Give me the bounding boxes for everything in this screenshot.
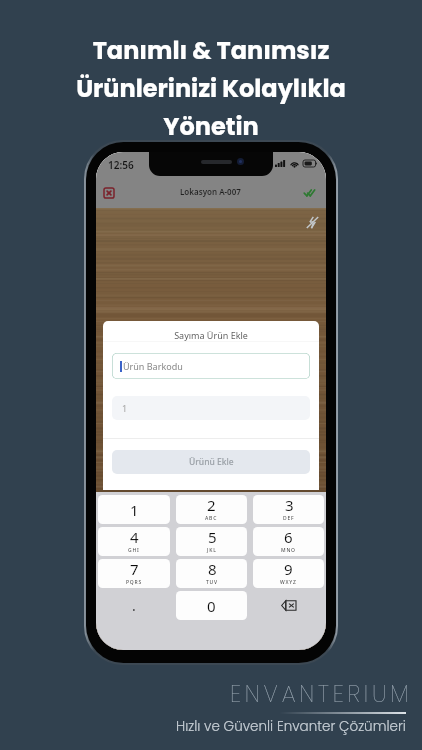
staticText: Lokasyon A-007 <box>180 186 241 197</box>
staticText: JKL <box>207 547 217 554</box>
button[interactable]: Sil <box>253 591 324 620</box>
staticText: . <box>132 596 136 615</box>
staticText: 8 <box>208 559 217 579</box>
staticText: 1 <box>122 402 128 414</box>
button[interactable]: . <box>98 591 170 620</box>
staticText: 1 <box>130 500 139 520</box>
button[interactable]: Ürünü Ekle <box>112 450 310 474</box>
staticText: 6 <box>284 527 293 547</box>
button[interactable]: 1 <box>98 495 170 524</box>
button[interactable]: 2 <box>176 495 247 524</box>
button[interactable]: 9 <box>253 559 324 588</box>
staticText: 12:56 <box>108 158 134 172</box>
button[interactable]: 0 <box>176 591 247 620</box>
button[interactable]: Ürün Barkodu <box>112 353 310 379</box>
staticText: 2 <box>207 495 216 515</box>
button[interactable]: 8 <box>176 559 247 588</box>
button[interactable]: 5 <box>176 527 247 556</box>
staticText: Sayıma Ürün Ekle <box>103 329 319 341</box>
staticText: TUV <box>206 579 218 586</box>
staticText: 9 <box>284 559 293 579</box>
staticText: 7 <box>130 559 139 579</box>
button[interactable]: 3 <box>253 495 324 524</box>
button[interactable]: 7 <box>98 559 170 588</box>
staticText: PQRS <box>126 579 143 586</box>
staticText: Hızlı ve Güvenli Envanter Çözümleri <box>176 717 406 736</box>
staticText: Ürünü Ekle <box>189 456 234 468</box>
button[interactable]: Flaş <box>302 212 322 232</box>
staticText: WXYZ <box>280 579 297 586</box>
staticText: MNO <box>281 547 296 554</box>
staticText: DEF <box>283 515 295 522</box>
staticText: ABC <box>205 515 218 522</box>
staticText: 4 <box>130 527 139 547</box>
button[interactable]: Kapat <box>100 184 118 202</box>
staticText: GHI <box>128 547 140 554</box>
staticText: 0 <box>207 596 216 616</box>
staticText: 5 <box>208 527 217 547</box>
button[interactable]: 6 <box>253 527 324 556</box>
staticText: ENVANTERIUM <box>230 678 413 710</box>
staticText: 3 <box>285 495 294 515</box>
staticText: Tanımlı & Tanımsız Ürünlerinizi Kolaylık… <box>0 34 422 143</box>
button[interactable]: Onayla <box>300 184 318 202</box>
staticText: Ürün Barkodu <box>123 360 183 372</box>
button[interactable]: 4 <box>98 527 170 556</box>
